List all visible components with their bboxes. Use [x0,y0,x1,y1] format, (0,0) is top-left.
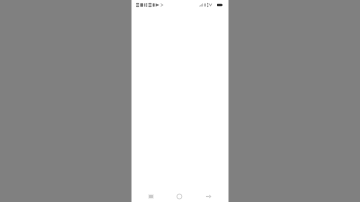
button[interactable]: Recent apps [141,187,161,202]
button[interactable]: Back [199,187,219,202]
button[interactable]: Home [169,187,189,202]
